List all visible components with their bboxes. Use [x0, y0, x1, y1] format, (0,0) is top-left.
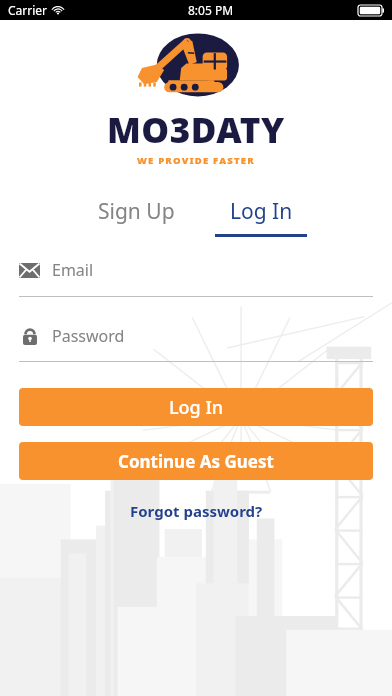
button[interactable]: Email: [19, 259, 373, 297]
staticText: Log In: [169, 395, 224, 420]
button[interactable]: Log In: [215, 193, 307, 237]
staticText: 8:05 PM: [188, 2, 234, 18]
staticText: MO3DATY: [107, 106, 285, 154]
staticText: Continue As Guest: [118, 450, 274, 473]
button[interactable]: Log In: [19, 388, 373, 426]
button[interactable]: Sign Up: [86, 193, 187, 230]
staticText: Sign Up: [98, 197, 175, 226]
staticText: Carrier: [8, 2, 48, 18]
button[interactable]: Forgot password?: [120, 496, 273, 526]
staticText: Email: [52, 259, 94, 281]
staticText: Log In: [230, 197, 293, 226]
staticText: Password: [52, 325, 125, 347]
button[interactable]: Continue As Guest: [19, 442, 373, 480]
staticText: WE PROVIDE FASTER: [137, 154, 255, 167]
button[interactable]: Password: [19, 325, 373, 362]
other: Password: [23, 328, 37, 345]
other: Email: [19, 263, 40, 278]
staticText: Forgot password?: [130, 501, 263, 521]
